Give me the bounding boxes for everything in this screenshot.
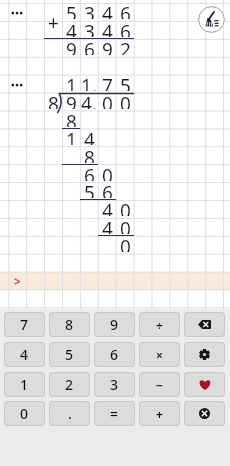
staticText: 7 — [102, 73, 113, 91]
staticText: 1 — [20, 375, 29, 394]
button[interactable]: 7 — [5, 313, 44, 336]
staticText: 9 — [66, 91, 77, 109]
staticText: 4 — [20, 345, 29, 364]
button[interactable]: . — [50, 402, 89, 425]
staticText: 7 — [20, 315, 29, 334]
staticText: 6 — [84, 37, 95, 55]
staticText: 6 — [110, 345, 119, 364]
staticText: = — [110, 404, 119, 423]
staticText: 4. — [81, 91, 97, 109]
button[interactable]: 5 — [50, 343, 89, 366]
button[interactable]: 0 — [5, 402, 44, 425]
staticText: 0 — [120, 91, 131, 109]
staticText: 4 — [102, 198, 113, 216]
button[interactable]: 2 — [50, 373, 89, 396]
staticText: 3 — [84, 1, 95, 19]
staticText: 4 — [66, 19, 77, 37]
staticText: 6 — [120, 19, 131, 37]
staticText: 1. — [81, 73, 97, 91]
button[interactable]: 9 — [95, 313, 134, 336]
button[interactable]: ÷ — [140, 313, 179, 336]
staticText: × — [156, 347, 163, 363]
button[interactable]: Clear — [198, 6, 225, 33]
staticText: 8 — [48, 91, 59, 109]
staticText: 4 — [84, 127, 95, 145]
staticText: 8 — [65, 315, 74, 334]
staticText: 3 — [84, 19, 95, 37]
staticText: 4 — [102, 1, 113, 19]
button[interactable]: Close — [185, 402, 224, 425]
staticText: ÷ — [156, 317, 163, 333]
staticText: 9 — [66, 37, 77, 55]
button[interactable]: 4 — [5, 343, 44, 366]
button[interactable]: = — [95, 402, 134, 425]
staticText: . — [68, 404, 72, 423]
staticText: 6 — [120, 1, 131, 19]
staticText: 0 — [120, 216, 131, 234]
staticText: 8 — [84, 145, 95, 163]
button[interactable]: + — [140, 402, 179, 425]
button[interactable]: Settings — [185, 343, 224, 366]
staticText: 4 — [102, 216, 113, 234]
staticText: 5 — [84, 180, 95, 198]
staticText: 0 — [102, 163, 113, 181]
staticText: 2 — [120, 37, 131, 55]
staticText: + — [48, 10, 59, 28]
button[interactable]: × — [140, 343, 179, 366]
staticText: 0 — [102, 91, 113, 109]
button[interactable]: Favorite — [185, 373, 224, 396]
staticText: 5 — [65, 345, 74, 364]
button[interactable]: Backspace — [185, 313, 224, 336]
staticText: > — [14, 273, 21, 289]
staticText: 5 — [66, 1, 77, 19]
staticText: + — [156, 406, 163, 422]
staticText: − — [156, 377, 163, 393]
staticText: 0 — [120, 198, 131, 216]
staticText: 9 — [102, 37, 113, 55]
button[interactable]: 1 — [5, 373, 44, 396]
button[interactable]: 6 — [95, 343, 134, 366]
button[interactable]: 8 — [50, 313, 89, 336]
staticText: 2 — [65, 375, 74, 394]
button[interactable]: 3 — [95, 373, 134, 396]
staticText: 3 — [110, 375, 119, 394]
staticText: 4 — [102, 19, 113, 37]
staticText: 5 — [120, 73, 131, 91]
staticText: 8 — [66, 109, 77, 127]
staticText: 9 — [110, 315, 119, 334]
staticText: 0 — [20, 404, 29, 423]
button[interactable]: − — [140, 373, 179, 396]
staticText: 1 — [66, 73, 77, 91]
staticText: 0 — [120, 234, 131, 252]
staticText: 6 — [102, 180, 113, 198]
staticText: 1 — [66, 127, 77, 145]
staticText: 6 — [84, 163, 95, 181]
